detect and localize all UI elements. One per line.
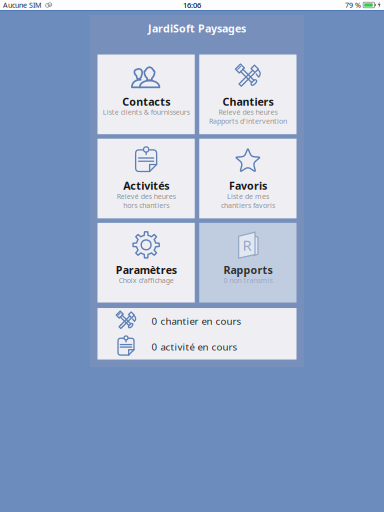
- staticText: Contacts: [122, 94, 170, 109]
- staticText: Liste de mes: [227, 191, 269, 201]
- button[interactable]: Contacts: [97, 54, 195, 134]
- staticText: Rapports: [223, 263, 272, 277]
- staticText: 16:06: [183, 0, 201, 10]
- button[interactable]: Favoris: [199, 139, 296, 218]
- staticText: Liste clients & fournisseurs: [103, 107, 190, 117]
- staticText: Relevé des heures: [117, 191, 176, 201]
- staticText: 0 chantier en cours: [151, 314, 241, 328]
- button[interactable]: Paramètres: [97, 223, 195, 303]
- staticText: hors chantiers: [123, 200, 169, 210]
- staticText: JardiSoft Paysages: [148, 21, 246, 35]
- staticText: Relevé des heures: [218, 107, 277, 117]
- staticText: Aucune SIM: [3, 0, 42, 10]
- button[interactable]: Activités: [97, 139, 195, 218]
- staticText: R: [242, 235, 251, 255]
- staticText: Rapports d'intervention: [209, 116, 287, 126]
- staticText: Paramètres: [116, 263, 177, 277]
- staticText: chantiers favoris: [221, 200, 275, 210]
- staticText: Chantiers: [222, 94, 273, 109]
- button[interactable]: Chantiers: [199, 54, 296, 134]
- staticText: Favoris: [229, 178, 267, 193]
- staticText: Choix d'affichage: [119, 275, 174, 285]
- button[interactable]: R: [199, 223, 296, 303]
- staticText: 0 activité en cours: [151, 340, 237, 353]
- staticText: 0 non transmis: [223, 275, 272, 285]
- button[interactable]: 0 activité en cours: [97, 334, 296, 360]
- staticText: 79 %: [345, 0, 361, 10]
- button[interactable]: 0 chantier en cours: [97, 308, 296, 334]
- staticText: Activités: [123, 178, 169, 193]
